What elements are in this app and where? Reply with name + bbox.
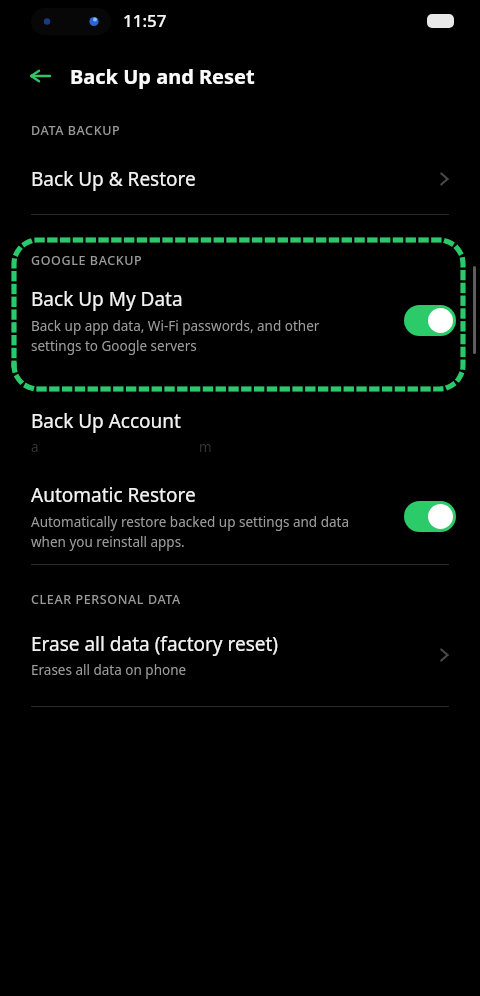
button[interactable]: Back (20, 56, 60, 96)
button[interactable]: Back Up & Restore (0, 156, 480, 202)
staticText: Automatically restore backed up settings… (31, 513, 366, 551)
staticText: Automatic Restore (31, 482, 196, 508)
staticText: m (199, 438, 212, 456)
button[interactable]: Toggle (404, 305, 456, 336)
button[interactable]: GOOGLE BACKUP (0, 234, 480, 355)
staticText: Erases all data on phone (31, 661, 187, 679)
button[interactable]: Back Up Account (0, 394, 480, 482)
staticText: Back up app data, Wi-Fi passwords, and o… (31, 317, 361, 355)
staticText: a (31, 438, 39, 456)
staticText: DATA BACKUP (31, 122, 121, 139)
staticText: GOOGLE BACKUP (31, 252, 143, 269)
staticText: CLEAR PERSONAL DATA (31, 591, 181, 608)
staticText: 11:57 (123, 9, 167, 32)
button[interactable]: Automatic Restore (0, 482, 480, 551)
button[interactable]: Erase all data (factory reset) (0, 624, 480, 686)
staticText: Back Up Account (31, 408, 181, 434)
staticText: Erase all data (factory reset) (31, 631, 279, 657)
staticText: Back Up and Reset (70, 63, 255, 90)
staticText: Back Up & Restore (31, 166, 196, 192)
staticText: Back Up My Data (31, 286, 183, 312)
button[interactable]: Toggle (404, 501, 456, 532)
